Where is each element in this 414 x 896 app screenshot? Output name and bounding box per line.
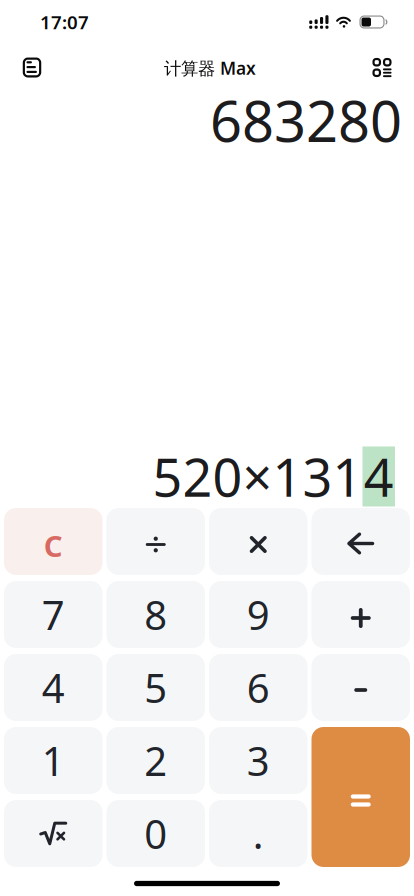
button[interactable]: Backspace (311, 508, 410, 575)
staticText: 4 (42, 661, 65, 714)
button[interactable]: Square root (4, 800, 102, 867)
button[interactable]: Plus (311, 581, 410, 648)
button[interactable]: 4 (4, 654, 102, 721)
button[interactable]: 6 (209, 654, 307, 721)
button[interactable]: Clear (4, 508, 102, 575)
staticText: C (44, 526, 63, 565)
button[interactable]: 0 (106, 800, 205, 867)
button[interactable]: 7 (4, 581, 102, 648)
staticText: . (253, 807, 264, 860)
staticText: 2 (144, 734, 167, 787)
button[interactable]: 8 (106, 581, 205, 648)
staticText: 计算器 Max (164, 56, 256, 79)
staticText: 683280 (210, 83, 402, 157)
staticText: 8 (144, 588, 167, 641)
staticText: 520×131 (152, 442, 362, 511)
button[interactable]: More apps (362, 47, 402, 87)
button[interactable]: Multiply (209, 508, 307, 575)
staticText: 5 (144, 661, 167, 714)
staticText: 17:07 (40, 10, 89, 34)
button[interactable]: 3 (209, 727, 307, 794)
button[interactable]: History (12, 47, 52, 87)
button[interactable]: 9 (209, 581, 307, 648)
staticText: 0 (144, 807, 167, 860)
staticText: 9 (247, 588, 270, 641)
staticText: 3 (247, 734, 270, 787)
button[interactable]: 1 (4, 727, 102, 794)
staticText: 4 (364, 442, 394, 511)
button[interactable]: Minus (311, 654, 410, 721)
staticText: 1 (42, 734, 65, 787)
button[interactable]: Decimal point (209, 800, 307, 867)
staticText: 6 (247, 661, 270, 714)
button[interactable]: Divide (106, 508, 205, 575)
button[interactable]: 5 (106, 654, 205, 721)
button[interactable]: Equals (311, 727, 410, 867)
button[interactable]: 2 (106, 727, 205, 794)
staticText: 7 (42, 588, 65, 641)
